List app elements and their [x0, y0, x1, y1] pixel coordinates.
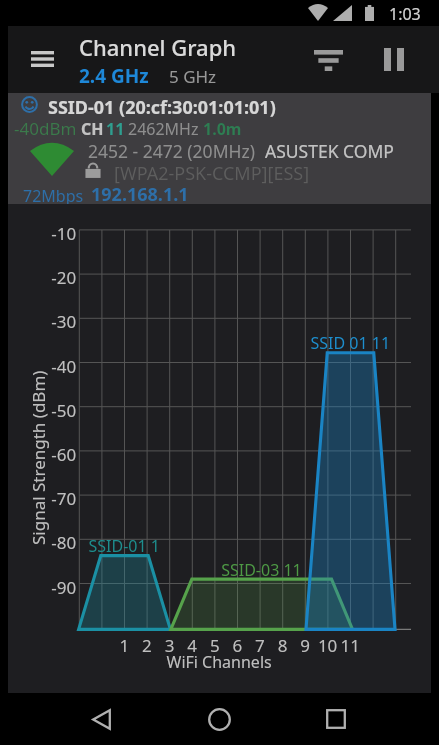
- button[interactable]: Open navigation menu: [18, 35, 66, 83]
- button[interactable]: SSID-01 (20:cf:30:01:01:01): [8, 93, 431, 204]
- staticText: Channel Graph: [79, 32, 237, 62]
- button[interactable]: Recents: [308, 693, 364, 745]
- staticText: ASUSTEK COMP: [265, 139, 394, 163]
- staticText: 72Mbps: [23, 185, 84, 207]
- button[interactable]: Home: [191, 693, 247, 745]
- staticText: 1:03: [389, 3, 421, 25]
- staticText: 2.4 GHz: [79, 63, 149, 89]
- button[interactable]: 2.4 GHz: [79, 63, 149, 89]
- staticText: 11: [106, 118, 125, 140]
- staticText: [WPA2-PSK-CCMP][ESS]: [114, 161, 310, 186]
- staticText: 1.0m: [203, 118, 242, 140]
- staticText: 2462MHz: [128, 118, 199, 140]
- button[interactable]: Pause: [370, 35, 418, 83]
- staticText: 2452 - 2472 (20MHz): [88, 139, 255, 163]
- staticText: CH: [81, 118, 104, 140]
- staticText: 192.168.1.1: [91, 182, 189, 207]
- button[interactable]: Back: [73, 693, 129, 745]
- button[interactable]: 5 GHz: [169, 65, 217, 89]
- staticText: SSID-01 (20:cf:30:01:01:01): [48, 95, 276, 120]
- staticText: 5 GHz: [169, 65, 217, 88]
- staticText: -40dBm: [14, 117, 77, 140]
- button[interactable]: Filter: [304, 36, 352, 84]
